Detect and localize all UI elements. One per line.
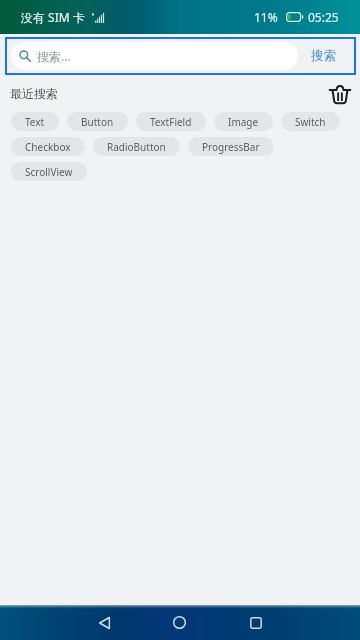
button[interactable]: Clear recent searches xyxy=(327,81,353,107)
staticText: 搜索... xyxy=(37,48,71,64)
staticText: ScrollView xyxy=(25,165,73,179)
button[interactable]: 搜索 xyxy=(298,44,350,68)
staticText: Button xyxy=(81,115,114,129)
button[interactable]: TextField xyxy=(136,112,206,131)
staticText: 没有 SIM 卡 xyxy=(21,9,85,25)
button[interactable]: Image xyxy=(214,112,273,131)
button[interactable]: Back xyxy=(82,605,126,640)
staticText: Checkbox xyxy=(25,140,71,154)
button[interactable]: Button xyxy=(67,112,128,131)
button[interactable]: RadioButton xyxy=(93,137,180,156)
button[interactable]: Text xyxy=(11,112,59,131)
staticText: Image xyxy=(228,115,259,129)
button[interactable]: Switch xyxy=(281,112,340,131)
staticText: TextField xyxy=(150,115,192,129)
staticText: 05:25 xyxy=(308,9,339,25)
staticText: Switch xyxy=(295,115,326,129)
staticText: ProgressBar xyxy=(202,140,260,154)
staticText: 11% xyxy=(254,9,278,25)
button[interactable]: 搜索... xyxy=(11,42,298,70)
button[interactable]: ProgressBar xyxy=(188,137,274,156)
button[interactable]: Checkbox xyxy=(11,137,85,156)
staticText: 最近搜索 xyxy=(10,86,58,101)
staticText: RadioButton xyxy=(107,140,166,154)
button[interactable]: ScrollView xyxy=(11,162,87,181)
staticText: 搜索 xyxy=(311,48,336,64)
button[interactable]: Recent apps xyxy=(234,605,278,640)
button[interactable]: Home xyxy=(157,605,201,640)
staticText: Text xyxy=(25,115,45,129)
